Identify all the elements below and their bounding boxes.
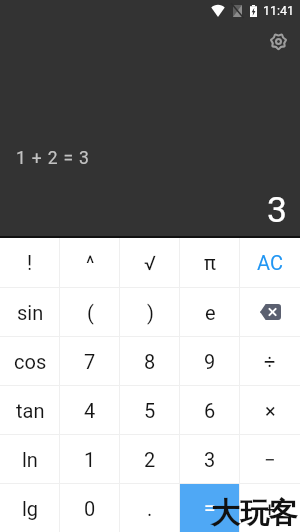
button[interactable]: lg	[0, 484, 60, 532]
staticText: 8	[144, 350, 156, 373]
staticText: 1	[84, 448, 96, 471]
button[interactable]: 1	[60, 435, 120, 483]
staticText: +	[264, 497, 276, 520]
button[interactable]: ^	[60, 238, 120, 287]
button[interactable]: 6	[180, 386, 240, 434]
staticText: AC	[257, 251, 283, 274]
button[interactable]: )	[120, 288, 180, 336]
button[interactable]: ÷	[240, 337, 300, 385]
staticText: =	[204, 496, 216, 521]
button[interactable]: cos	[0, 337, 60, 385]
staticText: ln	[22, 448, 38, 471]
button[interactable]: Settings	[261, 24, 296, 59]
button[interactable]: sin	[0, 288, 60, 336]
staticText: 2	[144, 448, 156, 471]
staticText: ÷	[264, 350, 276, 373]
staticText: π	[204, 251, 216, 274]
button[interactable]: 0	[60, 484, 120, 532]
staticText: 5	[144, 399, 156, 422]
button[interactable]: 7	[60, 337, 120, 385]
button[interactable]: −	[240, 435, 300, 483]
button[interactable]: e	[180, 288, 240, 336]
staticText: 9	[204, 350, 216, 373]
staticText: √	[144, 251, 156, 274]
staticText: 7	[84, 350, 96, 373]
button[interactable]: (	[60, 288, 120, 336]
staticText: 6	[204, 399, 216, 422]
button[interactable]: 8	[120, 337, 180, 385]
button[interactable]: .	[120, 484, 180, 532]
staticText: !	[27, 251, 33, 274]
button[interactable]: 2	[120, 435, 180, 483]
button[interactable]: AC	[240, 238, 300, 287]
staticText: 0	[84, 497, 96, 520]
button[interactable]: !	[0, 238, 60, 287]
button[interactable]: π	[180, 238, 240, 287]
staticText: cos	[14, 350, 47, 373]
button[interactable]: 4	[60, 386, 120, 434]
button[interactable]: ln	[0, 435, 60, 483]
button[interactable]: 9	[180, 337, 240, 385]
staticText: 11:41	[263, 3, 295, 18]
staticText: sin	[17, 301, 44, 324]
other: Backspace	[259, 304, 281, 320]
button[interactable]: =	[180, 484, 240, 532]
staticText: 3	[204, 448, 216, 471]
button[interactable]: Backspace	[240, 288, 300, 336]
button[interactable]: tan	[0, 386, 60, 434]
staticText: ×	[265, 399, 276, 422]
staticText: 1 + 2 = 3	[16, 148, 90, 169]
button[interactable]: +	[240, 484, 300, 532]
staticText: 大玩客	[211, 495, 298, 532]
staticText: 3	[267, 189, 287, 231]
button[interactable]: ×	[240, 386, 300, 434]
button[interactable]: √	[120, 238, 180, 287]
button[interactable]: 3	[180, 435, 240, 483]
staticText: .	[147, 497, 153, 520]
staticText: e	[205, 301, 216, 324]
staticText: (	[87, 301, 94, 324]
staticText: lg	[22, 497, 39, 520]
staticText: tan	[16, 399, 45, 422]
button[interactable]: 5	[120, 386, 180, 434]
staticText: ^	[86, 251, 95, 274]
staticText: )	[147, 301, 154, 324]
staticText: 4	[84, 399, 96, 422]
staticText: −	[264, 448, 276, 471]
